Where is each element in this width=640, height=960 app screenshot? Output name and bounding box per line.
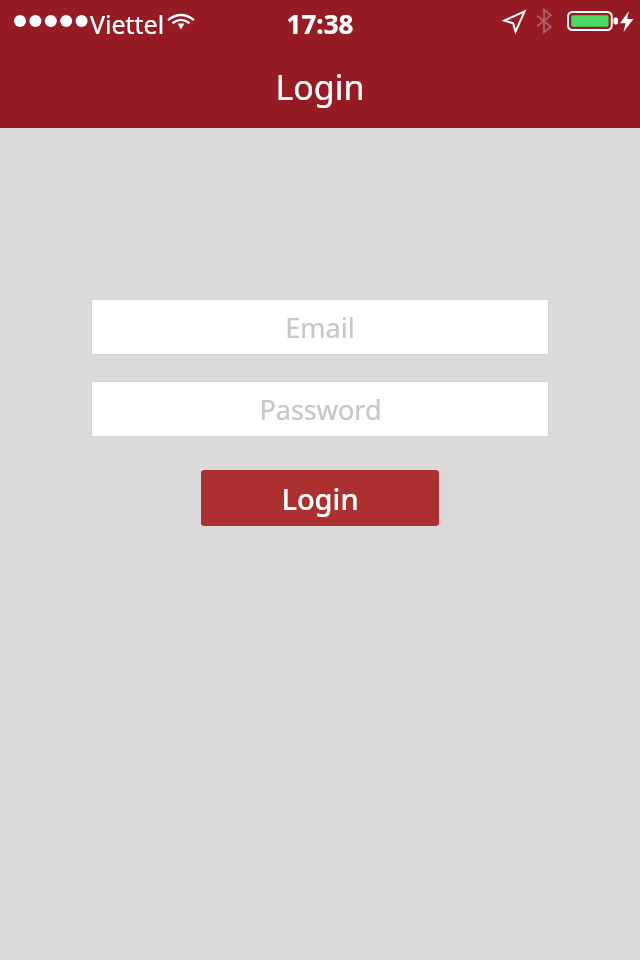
- button[interactable]: Password: [91, 381, 549, 437]
- staticText: Email: [285, 309, 355, 346]
- staticText: 17:38: [0, 6, 640, 41]
- staticText: Login: [0, 64, 640, 110]
- staticText: Password: [259, 391, 382, 428]
- button[interactable]: Email: [91, 299, 549, 355]
- staticText: Viettel: [90, 7, 165, 41]
- button[interactable]: Login: [201, 470, 439, 526]
- staticText: Login: [281, 479, 359, 518]
